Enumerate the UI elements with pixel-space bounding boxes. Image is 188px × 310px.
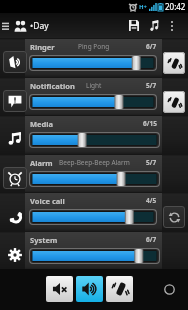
button[interactable]: Ringer (3, 51, 27, 73)
staticText: 6/7 (146, 42, 157, 51)
staticText: Media (30, 119, 54, 129)
staticText: Light (86, 81, 102, 90)
staticText: 5/7 (146, 158, 157, 167)
button[interactable]: System (3, 244, 27, 266)
staticText: Voice call (30, 196, 65, 206)
button[interactable]: Vibrate (163, 52, 185, 74)
button[interactable]: Voice call (3, 205, 27, 227)
staticText: H+ (139, 3, 148, 11)
button[interactable]: Alarm (3, 167, 27, 189)
staticText: Ringer (30, 42, 55, 52)
staticText: 6/15 (143, 119, 157, 128)
staticText: Beep-Beep-Beep Alarm (59, 158, 130, 167)
button[interactable]: Media (3, 128, 27, 150)
staticText: 4/5 (146, 196, 157, 205)
button[interactable]: Notification (3, 90, 27, 112)
button[interactable]: Silent mode (46, 276, 73, 302)
button[interactable]: Menu (0, 13, 10, 38)
button[interactable]: Vibrate mode (106, 276, 133, 302)
button[interactable]: Profiles (13, 13, 27, 38)
button[interactable]: Sound on (76, 276, 103, 302)
button[interactable]: Link volumes (163, 206, 185, 228)
staticText: •Day (30, 20, 49, 32)
button[interactable]: Ringtone (146, 13, 162, 38)
button[interactable]: Vibrate (163, 91, 185, 113)
staticText: 6/7 (146, 235, 157, 244)
staticText: Alarm (30, 158, 53, 168)
button[interactable]: More options (166, 13, 178, 38)
staticText: Notification (30, 81, 75, 91)
button[interactable]: Save (125, 13, 143, 38)
staticText: System (30, 235, 58, 245)
staticText: 20:42 (165, 1, 186, 12)
staticText: 5/7 (146, 81, 157, 90)
button[interactable]: Home (158, 278, 180, 300)
staticText: Ping Pong (78, 42, 110, 51)
